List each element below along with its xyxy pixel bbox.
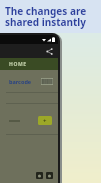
button[interactable]: Share — [44, 46, 54, 56]
staticText: + — [43, 117, 47, 125]
button[interactable]: HOME — [0, 58, 58, 70]
button[interactable]: Gallery — [46, 172, 53, 179]
button[interactable] — [0, 43, 23, 183]
button[interactable]: barcode — [9, 78, 53, 85]
staticText: The changes are shared instantly — [5, 4, 87, 29]
staticText: HOME — [9, 61, 27, 68]
staticText: barcode — [9, 78, 32, 85]
button[interactable]: + — [38, 116, 52, 125]
button[interactable]: Camera — [36, 172, 43, 179]
